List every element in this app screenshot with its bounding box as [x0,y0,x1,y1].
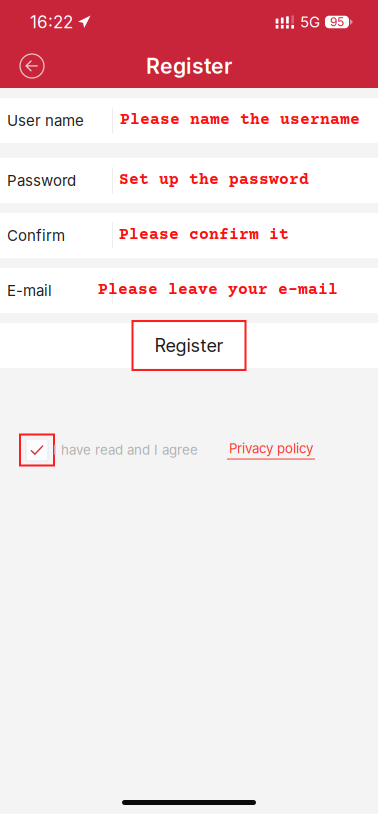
staticText: E-mail [7,281,52,299]
staticText: Set up the password [119,171,309,190]
button[interactable]: I have read and I agree [20,434,54,465]
staticText: 5G [300,13,320,31]
staticText: Please confirm it [119,226,289,245]
staticText: Confirm [7,226,65,244]
staticText: Please name the username [120,111,360,130]
staticText: Register [146,53,232,79]
staticText: I have read and I agree [53,442,198,458]
staticText: Register [154,335,223,356]
staticText: Privacy policy [229,440,313,457]
button[interactable]: Back [10,44,54,88]
staticText: User name [7,111,84,129]
button[interactable]: Register [132,321,245,370]
staticText: Password [7,171,76,189]
staticText: 16:22 [30,12,73,32]
staticText: Please leave your e-mail [98,281,338,300]
staticText: 95 [330,15,344,29]
button[interactable]: Privacy policy [227,440,315,460]
